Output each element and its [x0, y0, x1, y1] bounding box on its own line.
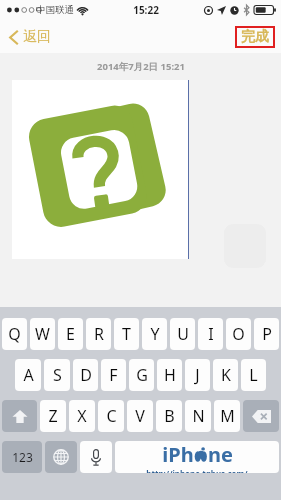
button[interactable]: D	[73, 359, 98, 391]
staticText: iPh	[162, 441, 194, 468]
button[interactable]: B	[156, 400, 182, 432]
button[interactable]: P	[254, 318, 279, 350]
staticText: E	[66, 323, 75, 345]
staticText: B	[164, 405, 175, 427]
button[interactable]: E	[58, 318, 83, 350]
staticText: 15:22	[133, 3, 159, 17]
button[interactable]: V	[127, 400, 153, 432]
staticText: http://iphone.tgbus.com/	[146, 468, 248, 473]
staticText: P	[262, 323, 272, 345]
staticText: 2014年7月2日 15:21	[97, 60, 185, 73]
staticText: I	[208, 323, 214, 345]
staticText: S	[53, 364, 62, 386]
staticText: O	[232, 323, 245, 345]
button[interactable]: 123	[2, 441, 42, 473]
staticText: Z	[48, 405, 58, 427]
staticText: G	[136, 364, 148, 386]
staticText: C	[106, 405, 117, 427]
button[interactable]: O	[226, 318, 251, 350]
button[interactable]: L	[241, 359, 266, 391]
staticText: Y	[150, 323, 160, 345]
staticText: T	[122, 323, 131, 345]
staticText: Q	[8, 323, 21, 345]
button[interactable]: C	[98, 400, 124, 432]
staticText: D	[80, 364, 92, 386]
staticText: X	[77, 405, 87, 427]
button[interactable]: 完成	[235, 26, 275, 48]
button[interactable]: iPh	[115, 441, 279, 473]
button[interactable]: Dictation	[80, 441, 112, 473]
button[interactable]: S	[44, 359, 70, 391]
staticText: F	[109, 364, 118, 386]
staticText: 完成	[241, 28, 269, 46]
staticText: 返回	[23, 28, 51, 46]
button[interactable]: I	[198, 318, 223, 350]
staticText: W	[35, 323, 50, 345]
button[interactable]: J	[185, 359, 210, 391]
button[interactable]: K	[213, 359, 238, 391]
button[interactable]: 返回	[7, 24, 53, 50]
button[interactable]: Backspace	[243, 400, 279, 432]
button[interactable]: X	[69, 400, 95, 432]
button[interactable]: U	[170, 318, 195, 350]
staticText: 123	[12, 449, 33, 465]
staticText: K	[221, 364, 231, 386]
staticText: 中国联通	[36, 4, 74, 16]
staticText: L	[249, 364, 258, 386]
staticText: V	[135, 405, 145, 427]
staticText: J	[195, 364, 200, 386]
button[interactable]: T	[114, 318, 139, 350]
button[interactable]: Q	[2, 318, 27, 350]
staticText: N	[192, 405, 205, 427]
staticText: ne	[208, 441, 233, 468]
staticText: U	[177, 323, 189, 345]
button[interactable]: F	[101, 359, 126, 391]
button[interactable]: A	[15, 359, 41, 391]
button[interactable]: Z	[40, 400, 66, 432]
button[interactable]: Shift	[2, 400, 37, 432]
staticText: R	[94, 323, 104, 345]
button[interactable]: G	[129, 359, 154, 391]
button[interactable]	[12, 80, 188, 259]
button[interactable]: W	[30, 318, 55, 350]
staticText: M	[220, 405, 235, 427]
staticText: H	[164, 364, 176, 386]
button[interactable]: H	[157, 359, 182, 391]
button[interactable]: Change keyboard	[45, 441, 77, 473]
button[interactable]: Y	[142, 318, 167, 350]
button[interactable]: R	[86, 318, 111, 350]
button[interactable]: N	[185, 400, 211, 432]
button[interactable]: M	[214, 400, 240, 432]
staticText: A	[23, 364, 34, 386]
